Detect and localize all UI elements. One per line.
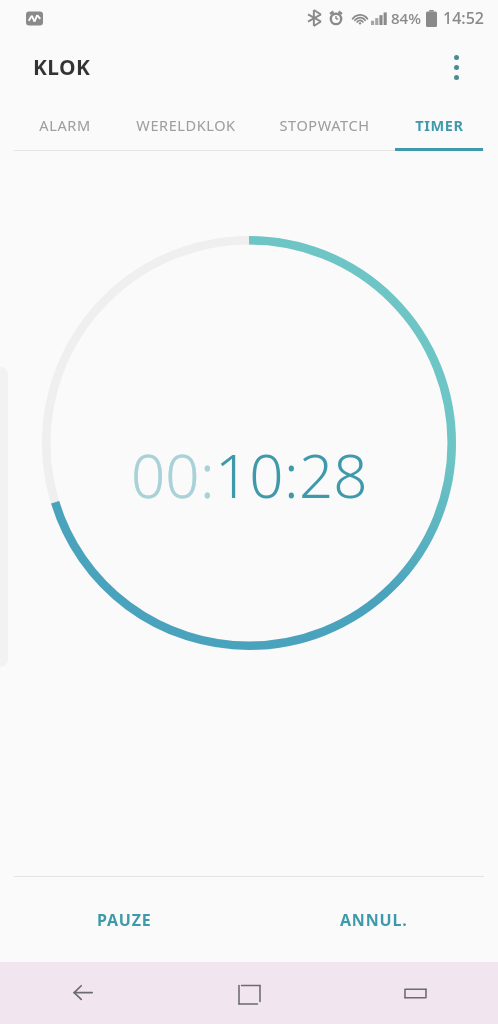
button[interactable]: WERELDKLOK — [120, 98, 252, 151]
button[interactable]: TIMER — [395, 98, 483, 151]
staticText: : — [200, 434, 215, 516]
staticText: 10 — [215, 434, 284, 516]
staticText: 84% — [391, 8, 421, 28]
staticText: TIMER — [415, 115, 464, 135]
button[interactable]: Back — [0, 962, 166, 1024]
staticText: PAUZE — [97, 909, 152, 931]
staticText: ALARM — [39, 115, 91, 135]
staticText: WERELDKLOK — [136, 115, 236, 135]
button[interactable]: Recent apps — [332, 962, 498, 1024]
button[interactable]: Home — [166, 962, 332, 1024]
staticText: STOPWATCH — [279, 115, 370, 135]
staticText: ANNUL. — [340, 909, 408, 931]
button[interactable]: PAUZE — [0, 877, 249, 962]
staticText: 14:52 — [443, 7, 484, 29]
button[interactable]: STOPWATCH — [262, 98, 386, 151]
staticText: 28 — [299, 434, 368, 516]
staticText: KLOK — [33, 53, 91, 82]
button[interactable]: ALARM — [19, 98, 111, 151]
staticText: 00 — [131, 434, 200, 516]
staticText: : — [284, 434, 299, 516]
button[interactable]: ANNUL. — [249, 877, 498, 962]
button[interactable]: More options — [436, 47, 476, 87]
